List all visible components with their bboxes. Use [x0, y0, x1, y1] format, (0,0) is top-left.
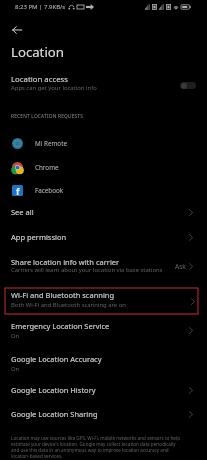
staticText: Google Location History — [11, 385, 189, 395]
staticText: Chrome — [35, 163, 59, 172]
staticText: Share location info with carrier — [11, 257, 120, 267]
button[interactable]: f — [0, 179, 207, 201]
staticText: f — [16, 185, 20, 196]
staticText: On — [11, 365, 20, 373]
staticText: See all — [11, 207, 189, 217]
button[interactable]: Wi-Fi and Bluetooth scanning — [5, 288, 198, 314]
button[interactable]: Back — [5, 18, 29, 42]
button[interactable]: Location access — [0, 71, 207, 95]
staticText: App permission — [11, 232, 189, 242]
staticText: Google Location Accuracy — [11, 354, 102, 364]
staticText: Apps can get your location info — [11, 84, 97, 92]
staticText: Mi Remote — [35, 139, 67, 148]
button[interactable]: Mi Remote — [0, 132, 207, 154]
staticText: Both Wi-Fi and Bluetooth scanning are on — [11, 301, 126, 309]
button[interactable]: Google Location Accuracy — [0, 351, 207, 375]
staticText: Location — [11, 43, 64, 61]
button[interactable]: Google Location Sharing — [0, 402, 207, 426]
button[interactable]: Emergency Location Service — [0, 318, 207, 342]
staticText: Facebook — [35, 186, 64, 195]
staticText: RECENT LOCATION REQUESTS — [11, 113, 84, 120]
staticText: Location may use sources like GPS, Wi-Fi… — [11, 435, 185, 459]
staticText: 8:23 PM | 7.9KB/s — [15, 3, 66, 11]
staticText: Ask — [175, 262, 186, 271]
button[interactable]: Share location info with carrier — [0, 254, 207, 278]
button[interactable]: Google Location History — [0, 378, 207, 402]
staticText: Wi-Fi and Bluetooth scanning — [11, 290, 115, 300]
button[interactable]: App permission — [0, 225, 207, 249]
staticText: Location access — [11, 74, 69, 85]
staticText: Emergency Location Service — [11, 321, 110, 331]
button[interactable]: See all — [0, 200, 207, 224]
staticText: Carriers will learn about your location … — [11, 266, 163, 274]
staticText: On — [11, 332, 20, 340]
staticText: Google Location Sharing — [11, 409, 189, 419]
button[interactable]: Chrome — [0, 156, 207, 178]
